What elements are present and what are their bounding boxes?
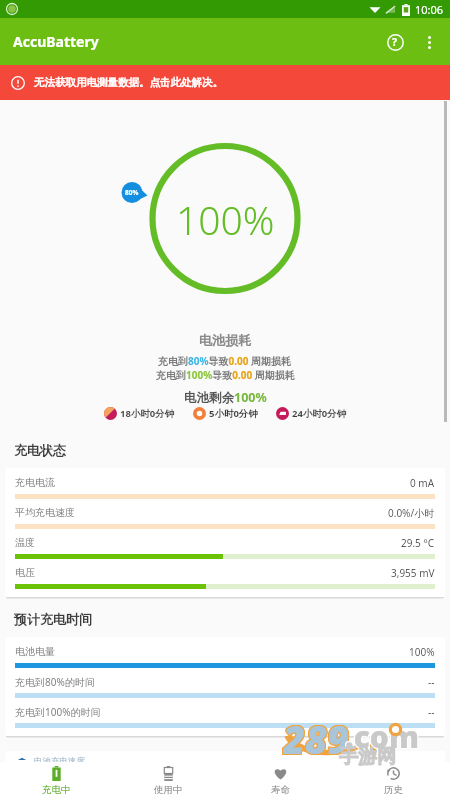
staticText: -- (428, 675, 435, 689)
staticText: 电池电量 (15, 645, 55, 658)
button[interactable]: 电池充电速度 (5, 751, 445, 762)
button[interactable]: 平均充电速度 (5, 502, 445, 532)
staticText: 平均充电速度 (15, 506, 75, 519)
staticText: 5小时0分钟 (209, 407, 258, 420)
button[interactable]: 无法获取用电测量数据。点击此处解决。 (0, 65, 450, 100)
staticText: .com (345, 717, 419, 758)
staticText: .com (346, 715, 420, 756)
staticText: 100% (409, 645, 435, 659)
staticText: 100% (176, 193, 275, 246)
staticText: AccuBattery (13, 32, 99, 51)
staticText: 0 mA (410, 476, 435, 490)
staticText: 29.5 °C (401, 536, 435, 550)
button[interactable]: 寿命 (224, 762, 337, 800)
staticText: 充电电流 (15, 476, 55, 489)
staticText: 历史 (384, 784, 403, 796)
staticText: 无法获取用电测量数据。点击此处解决。 (34, 76, 223, 89)
staticText: .com (344, 717, 418, 758)
staticText: 手游网 (339, 745, 396, 769)
staticText: 18小时0分钟 (120, 407, 175, 420)
staticText: 0.0%/小时 (388, 506, 435, 520)
staticText: ? (392, 35, 398, 49)
button[interactable]: 历史 (337, 762, 450, 800)
staticText: 289 (282, 712, 349, 758)
staticText: 充电到100%导致0.00 周期损耗 (156, 368, 295, 382)
staticText: .com (345, 716, 419, 757)
button[interactable]: 充电到100%的时间 (5, 701, 445, 731)
staticText: 充电到80%导致0.00 周期损耗 (158, 354, 292, 368)
staticText: 寿命 (271, 784, 290, 796)
button[interactable]: 5小时0分钟 (193, 407, 258, 420)
button[interactable]: 使用中 (112, 762, 224, 800)
button[interactable]: 24小时0分钟 (276, 407, 347, 420)
staticText: 使用中 (154, 784, 183, 796)
staticText: .com (344, 716, 418, 757)
staticText: .com (344, 715, 418, 756)
staticText: .com (346, 716, 420, 757)
button[interactable]: 18小时0分钟 (104, 407, 175, 420)
staticText: 电池损耗 (199, 332, 251, 348)
staticText: 充电状态 (14, 442, 66, 458)
staticText: .com (346, 717, 420, 758)
button[interactable]: 充电到80%的时间 (5, 671, 445, 701)
staticText: 24小时0分钟 (292, 407, 347, 420)
staticText: 289 (282, 713, 349, 759)
staticText: 289 (283, 714, 350, 760)
staticText: 289 (282, 714, 349, 760)
staticText: 预计充电时间 (14, 611, 92, 627)
staticText: 10:06 (415, 2, 444, 17)
staticText: -- (428, 705, 435, 719)
button[interactable]: 温度 (5, 532, 445, 562)
staticText: 3,955 mV (391, 566, 435, 580)
staticText: 289 (284, 712, 351, 758)
button[interactable]: More options (412, 25, 446, 59)
staticText: .com (345, 715, 419, 756)
button[interactable]: 电压 (5, 562, 445, 592)
button[interactable]: Help (378, 22, 412, 62)
staticText: 温度 (15, 536, 35, 549)
button[interactable]: 电池电量 (5, 641, 445, 671)
staticText: 充电中 (42, 784, 71, 796)
staticText: 充电到80%的时间 (15, 675, 95, 689)
staticText: 289 (283, 713, 350, 759)
staticText: 电池剩余100% (184, 389, 267, 406)
staticText: 80% (125, 188, 139, 197)
staticText: 充电到100%的时间 (15, 705, 101, 719)
button[interactable]: 充电中 (0, 762, 112, 800)
staticText: 电压 (15, 566, 35, 579)
staticText: 289 (284, 714, 351, 760)
staticText: 289 (284, 713, 351, 759)
staticText: 电池充电速度 (34, 756, 85, 762)
button[interactable]: 充电电流 (5, 472, 445, 502)
staticText: 289 (283, 712, 350, 758)
